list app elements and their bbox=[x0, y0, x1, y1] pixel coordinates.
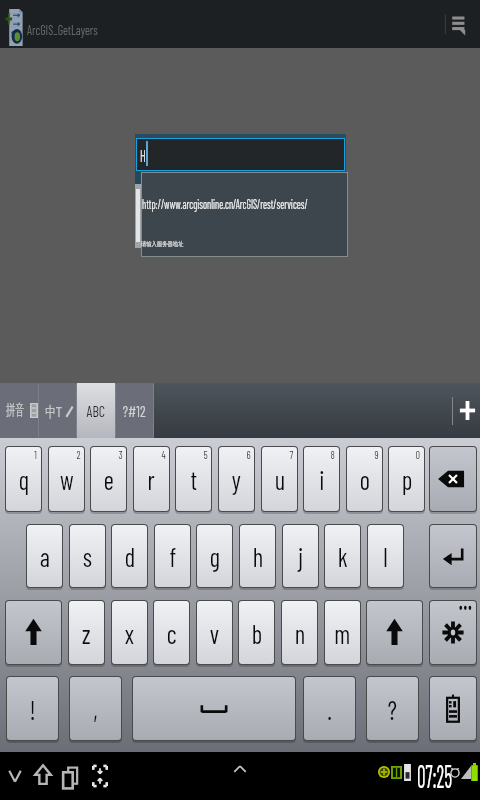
staticText: , bbox=[93, 692, 98, 726]
staticText: m bbox=[334, 616, 351, 650]
staticText: i bbox=[319, 462, 325, 496]
button[interactable]: More options bbox=[438, 0, 480, 48]
button[interactable]: ime bbox=[430, 677, 476, 740]
button[interactable]: , bbox=[70, 677, 121, 740]
button[interactable]: y bbox=[219, 447, 254, 511]
staticText: ! bbox=[29, 692, 36, 726]
staticText: y bbox=[232, 462, 241, 496]
staticText: u bbox=[275, 462, 285, 496]
button[interactable]: c bbox=[154, 601, 189, 664]
button[interactable]: r bbox=[134, 447, 169, 511]
staticText: v bbox=[210, 616, 219, 650]
button[interactable]: 拼音 bbox=[0, 383, 38, 438]
staticText: q bbox=[19, 462, 29, 496]
staticText: z bbox=[82, 616, 91, 650]
staticText: t bbox=[190, 462, 197, 496]
staticText: 3 bbox=[118, 447, 123, 461]
staticText: 4 bbox=[161, 447, 166, 461]
button[interactable] bbox=[142, 173, 347, 256]
staticText: 5 bbox=[203, 447, 208, 461]
staticText: f bbox=[169, 539, 176, 573]
staticText: http://www.arcgisonline.cn/ArcGIS/rest/s… bbox=[142, 196, 308, 212]
button[interactable]: ?#12 bbox=[116, 383, 153, 438]
staticText: e bbox=[104, 462, 114, 496]
button[interactable]: Full screen bbox=[86, 762, 114, 790]
button[interactable]: p bbox=[389, 447, 424, 511]
button[interactable]: v bbox=[197, 601, 232, 664]
staticText: 1 bbox=[34, 447, 38, 461]
staticText: 0 bbox=[415, 447, 421, 461]
button[interactable]: Home bbox=[29, 762, 57, 790]
staticText: l bbox=[383, 539, 389, 573]
button[interactable]: x bbox=[112, 601, 147, 664]
staticText: ABC bbox=[87, 402, 105, 420]
staticText: ArcGIS_GetLayers bbox=[27, 21, 98, 38]
staticText: 6 bbox=[246, 447, 251, 461]
staticText: s bbox=[83, 539, 92, 573]
staticText: a bbox=[40, 539, 50, 573]
button[interactable]: shift bbox=[6, 601, 61, 664]
button[interactable]: u bbox=[262, 447, 297, 511]
button[interactable]: k bbox=[325, 525, 360, 587]
staticText: c bbox=[167, 616, 177, 650]
button[interactable]: b bbox=[239, 601, 274, 664]
button[interactable]: d bbox=[112, 525, 147, 587]
button[interactable]: Recents bbox=[57, 765, 85, 791]
staticText: 9 bbox=[374, 447, 379, 461]
staticText: 8 bbox=[330, 447, 336, 461]
staticText: p bbox=[402, 462, 412, 496]
button[interactable]: q bbox=[6, 447, 41, 511]
button[interactable]: o bbox=[347, 447, 382, 511]
button[interactable]: ? bbox=[367, 677, 418, 740]
button[interactable]: i bbox=[304, 447, 339, 511]
staticText: . bbox=[327, 692, 333, 726]
button[interactable]: enter bbox=[430, 525, 476, 587]
button[interactable]: Add input method bbox=[455, 383, 480, 438]
staticText: o bbox=[360, 462, 370, 496]
button[interactable]: back bbox=[430, 447, 476, 511]
staticText: x bbox=[125, 616, 134, 650]
staticText: d bbox=[125, 539, 135, 573]
button[interactable]: space bbox=[133, 677, 295, 740]
button[interactable]: e bbox=[91, 447, 126, 511]
button[interactable]: m bbox=[325, 601, 360, 664]
staticText: 2 bbox=[76, 447, 81, 461]
staticText: h bbox=[253, 539, 263, 573]
staticText: w bbox=[60, 462, 74, 496]
button[interactable]: j bbox=[283, 525, 318, 587]
button[interactable]: h bbox=[240, 525, 275, 587]
button[interactable]: Hide keyboard bbox=[2, 766, 28, 788]
staticText: 07:25 bbox=[417, 755, 452, 795]
staticText: H bbox=[140, 145, 146, 165]
button[interactable]: z bbox=[69, 601, 104, 664]
button[interactable]: n bbox=[282, 601, 317, 664]
button[interactable]: ! bbox=[7, 677, 58, 740]
button[interactable]: a bbox=[27, 525, 62, 587]
staticText: ? bbox=[388, 692, 397, 726]
staticText: ?#12 bbox=[123, 402, 146, 420]
staticText: k bbox=[338, 539, 348, 573]
staticText: j bbox=[298, 539, 304, 573]
button[interactable]: . bbox=[304, 677, 355, 740]
button[interactable]: s bbox=[70, 525, 105, 587]
button[interactable]: w bbox=[49, 447, 84, 511]
button[interactable]: gear bbox=[430, 601, 476, 664]
staticText: b bbox=[252, 616, 262, 650]
button[interactable]: l bbox=[368, 525, 403, 587]
button[interactable]: t bbox=[176, 447, 211, 511]
staticText: 7 bbox=[289, 447, 294, 461]
staticText: n bbox=[295, 616, 305, 650]
button[interactable]: 中T bbox=[39, 383, 76, 438]
staticText: g bbox=[210, 539, 220, 573]
button[interactable]: ABC bbox=[77, 383, 115, 438]
button[interactable]: H bbox=[137, 139, 344, 170]
staticText: 中T bbox=[46, 401, 62, 421]
button[interactable]: f bbox=[155, 525, 190, 587]
staticText: 拼音 bbox=[6, 401, 24, 420]
button[interactable]: shift bbox=[367, 601, 422, 664]
button[interactable]: g bbox=[197, 525, 232, 587]
staticText: r bbox=[147, 462, 155, 496]
button[interactable]: Expand bbox=[228, 757, 252, 781]
staticText: 请输入服务器地址 bbox=[141, 240, 183, 248]
